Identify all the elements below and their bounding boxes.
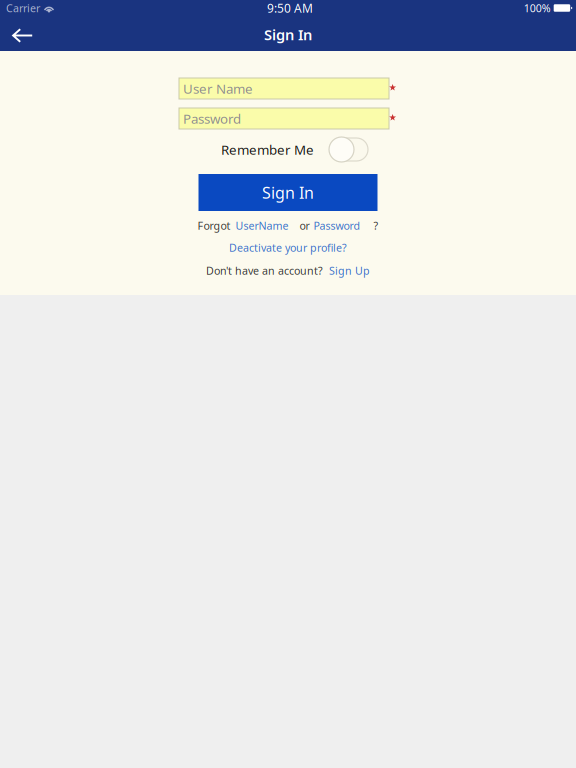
staticText: ? [373, 218, 378, 233]
staticText: 100% [524, 1, 551, 15]
staticText: Sign In [264, 25, 312, 44]
staticText: Forgot [197, 218, 230, 233]
button[interactable]: Sign Up [329, 263, 370, 278]
staticText: Sign In [262, 182, 314, 203]
button[interactable]: Remember Me [329, 137, 368, 162]
staticText: Carrier [6, 1, 40, 15]
button[interactable]: Sign In [198, 174, 377, 211]
button[interactable]: Password [313, 218, 360, 233]
staticText: Sign Up [329, 263, 370, 278]
staticText: 9:50 AM [267, 0, 313, 16]
staticText: Don't have an account? [206, 263, 323, 278]
staticText: Deactivate your profile? [229, 240, 347, 255]
staticText: Password [313, 218, 360, 233]
button[interactable]: UserName [235, 218, 288, 233]
staticText: User Name [183, 80, 253, 97]
staticText: or [299, 218, 309, 233]
staticText: UserName [235, 218, 288, 233]
button[interactable]: Deactivate your profile? [229, 241, 347, 254]
staticText: Remember Me [221, 141, 314, 158]
staticText: Password [183, 110, 241, 127]
button[interactable]: Back [0, 20, 45, 51]
